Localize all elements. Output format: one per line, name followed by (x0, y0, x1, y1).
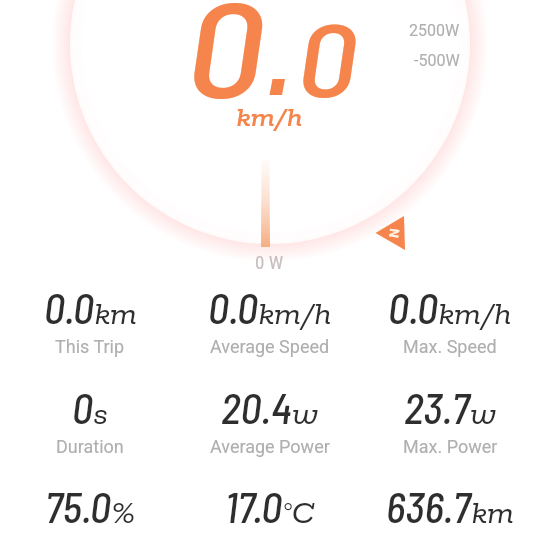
staticText: 0.0 (388, 282, 438, 332)
staticText: w (470, 396, 497, 435)
staticText: 0.0 (44, 282, 94, 332)
staticText: This Trip (55, 336, 125, 357)
staticText: N (386, 227, 402, 239)
button[interactable]: 636.7 (360, 481, 540, 531)
other: Compass north (385, 224, 403, 242)
staticText: % (111, 495, 136, 534)
button[interactable]: 0 (0, 0, 540, 540)
staticText: 0 W (255, 251, 284, 273)
staticText: km/h (236, 101, 303, 135)
button[interactable]: 17.0 (180, 481, 360, 531)
staticText: km (471, 495, 514, 534)
staticText: 20.4 (221, 382, 292, 432)
staticText: Max. Speed (403, 336, 497, 357)
staticText: Average Power (210, 436, 330, 457)
staticText: 23.7 (404, 382, 470, 432)
button[interactable]: 75.0 (0, 481, 180, 531)
staticText: w (292, 396, 319, 435)
staticText: 0 (297, 0, 357, 118)
staticText: 75.0 (45, 481, 111, 531)
staticText: -500W (414, 51, 460, 70)
staticText: 2500W (409, 21, 460, 40)
button[interactable]: 0.0 (360, 282, 540, 353)
staticText: Max. Power (403, 436, 498, 457)
button[interactable]: 23.7 (360, 382, 540, 453)
button[interactable]: 0 (0, 382, 180, 453)
staticText: 0.0 (208, 282, 258, 332)
staticText: km (94, 296, 137, 335)
button[interactable]: 0.0 (180, 282, 360, 353)
staticText: km/h (258, 296, 332, 335)
staticText: Duration (56, 436, 124, 457)
staticText: 636.7 (386, 481, 471, 531)
staticText: Average Speed (210, 336, 330, 357)
staticText: km/h (438, 296, 512, 335)
staticText: °C (282, 495, 315, 534)
staticText: 0 (72, 382, 93, 432)
staticText: s (93, 396, 108, 435)
staticText: 17.0 (225, 481, 282, 531)
staticText: 0 (186, 0, 263, 125)
button[interactable]: 20.4 (180, 382, 360, 453)
button[interactable]: 0.0 (0, 282, 180, 353)
